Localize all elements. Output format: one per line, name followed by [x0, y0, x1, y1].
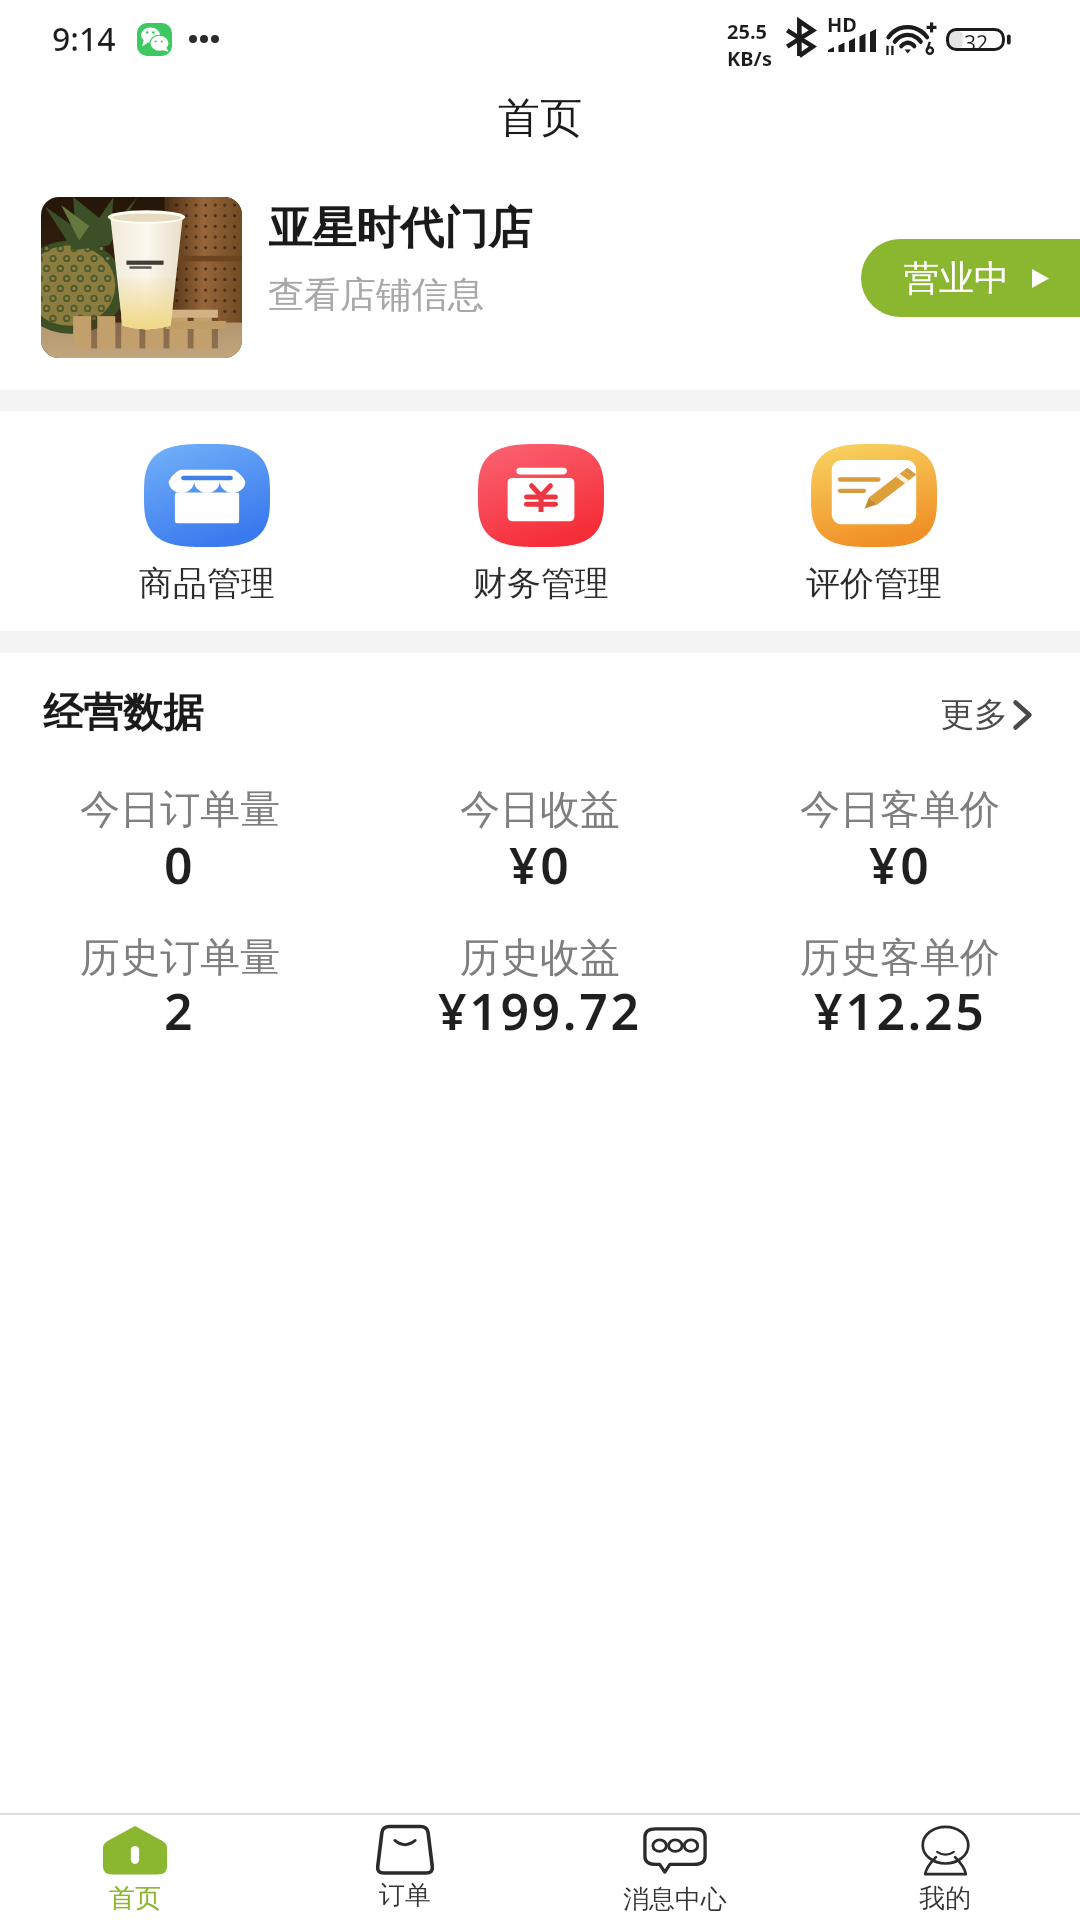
staticText: 25.5 — [727, 18, 767, 45]
button[interactable]: 营业中 — [861, 239, 1080, 317]
staticText: 我的 — [919, 1882, 971, 1915]
staticText: ¥199.72 — [438, 977, 642, 1045]
button[interactable]: 我的 — [810, 1815, 1080, 1920]
staticText: ¥0 — [509, 831, 572, 899]
staticText: 历史收益 — [460, 932, 620, 982]
staticText: 消息中心 — [623, 1883, 727, 1916]
staticText: 首页 — [109, 1882, 161, 1915]
button[interactable]: 财务管理 — [374, 420, 707, 620]
staticText: ¥0 — [869, 831, 932, 899]
staticText: 0 — [164, 831, 196, 899]
staticText: ¥12.25 — [814, 977, 987, 1045]
staticText: KB/s — [727, 45, 772, 72]
staticText: 历史客单价 — [800, 932, 1000, 982]
button[interactable]: 亚星时代门店 — [0, 170, 820, 385]
staticText: 首页 — [498, 92, 582, 145]
staticText: 今日订单量 — [80, 784, 280, 834]
staticText: 历史订单量 — [80, 932, 280, 982]
staticText: 9:14 — [52, 17, 116, 61]
staticText: 订单 — [379, 1879, 431, 1912]
button[interactable]: 消息中心 — [540, 1815, 810, 1920]
staticText: 商品管理 — [139, 562, 275, 605]
staticText: 32 — [964, 29, 989, 58]
button[interactable]: 商品管理 — [40, 420, 374, 620]
button[interactable]: 订单 — [270, 1815, 540, 1920]
staticText: 今日收益 — [460, 784, 620, 834]
staticText: 评价管理 — [806, 562, 942, 605]
button[interactable]: 首页 — [0, 1815, 270, 1920]
staticText: 营业中 — [904, 256, 1009, 300]
staticText: HD — [827, 11, 857, 38]
staticText: 今日客单价 — [800, 784, 1000, 834]
staticText: 经营数据 — [43, 687, 203, 737]
staticText: 更多 — [940, 693, 1008, 736]
staticText: 财务管理 — [473, 562, 609, 605]
staticText: 亚星时代门店 — [268, 201, 532, 256]
staticText: 查看店铺信息 — [268, 272, 484, 317]
button[interactable]: 评价管理 — [707, 420, 1040, 620]
button[interactable]: 更多 — [940, 693, 1032, 736]
staticText: 2 — [164, 977, 196, 1045]
